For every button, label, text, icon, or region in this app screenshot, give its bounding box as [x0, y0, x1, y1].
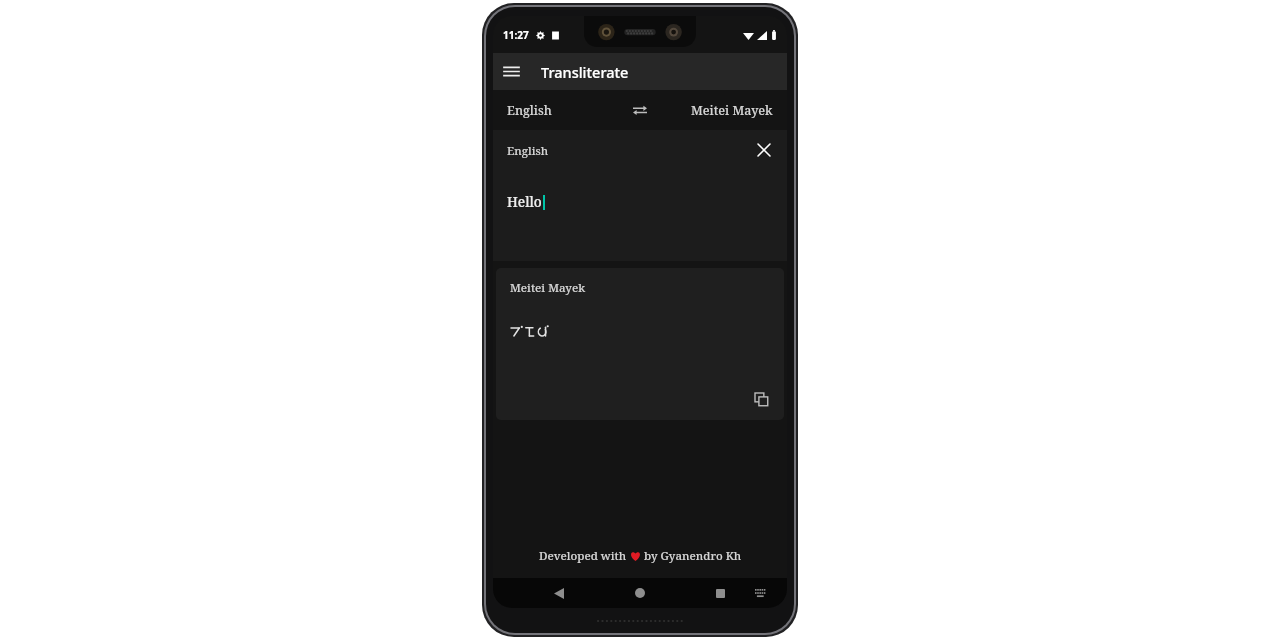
button[interactable]: Open navigation menu — [493, 53, 530, 90]
button[interactable]: Copy translation — [746, 384, 776, 414]
button[interactable]: Meitei Mayek — [496, 268, 784, 420]
staticText: English — [507, 102, 552, 119]
button[interactable]: Back — [544, 578, 574, 608]
button[interactable]: Recent apps — [705, 578, 735, 608]
button[interactable]: English — [504, 97, 555, 124]
staticText: by Gyanendro Kh — [641, 548, 742, 564]
button[interactable]: Swap languages — [625, 95, 655, 125]
button[interactable]: Home — [625, 578, 655, 608]
staticText: Hello — [507, 193, 542, 211]
staticText: English — [507, 143, 549, 159]
staticText: Meitei Mayek — [510, 280, 586, 296]
button[interactable]: Clear text — [749, 135, 779, 165]
staticText: Developed with — [539, 548, 630, 564]
button[interactable]: Meitei Mayek — [688, 97, 776, 124]
button[interactable]: Switch keyboard — [747, 580, 773, 606]
staticText: Transliterate — [541, 62, 629, 82]
staticText: Meitei Mayek — [691, 102, 773, 119]
staticText: 11:27 — [503, 28, 529, 42]
